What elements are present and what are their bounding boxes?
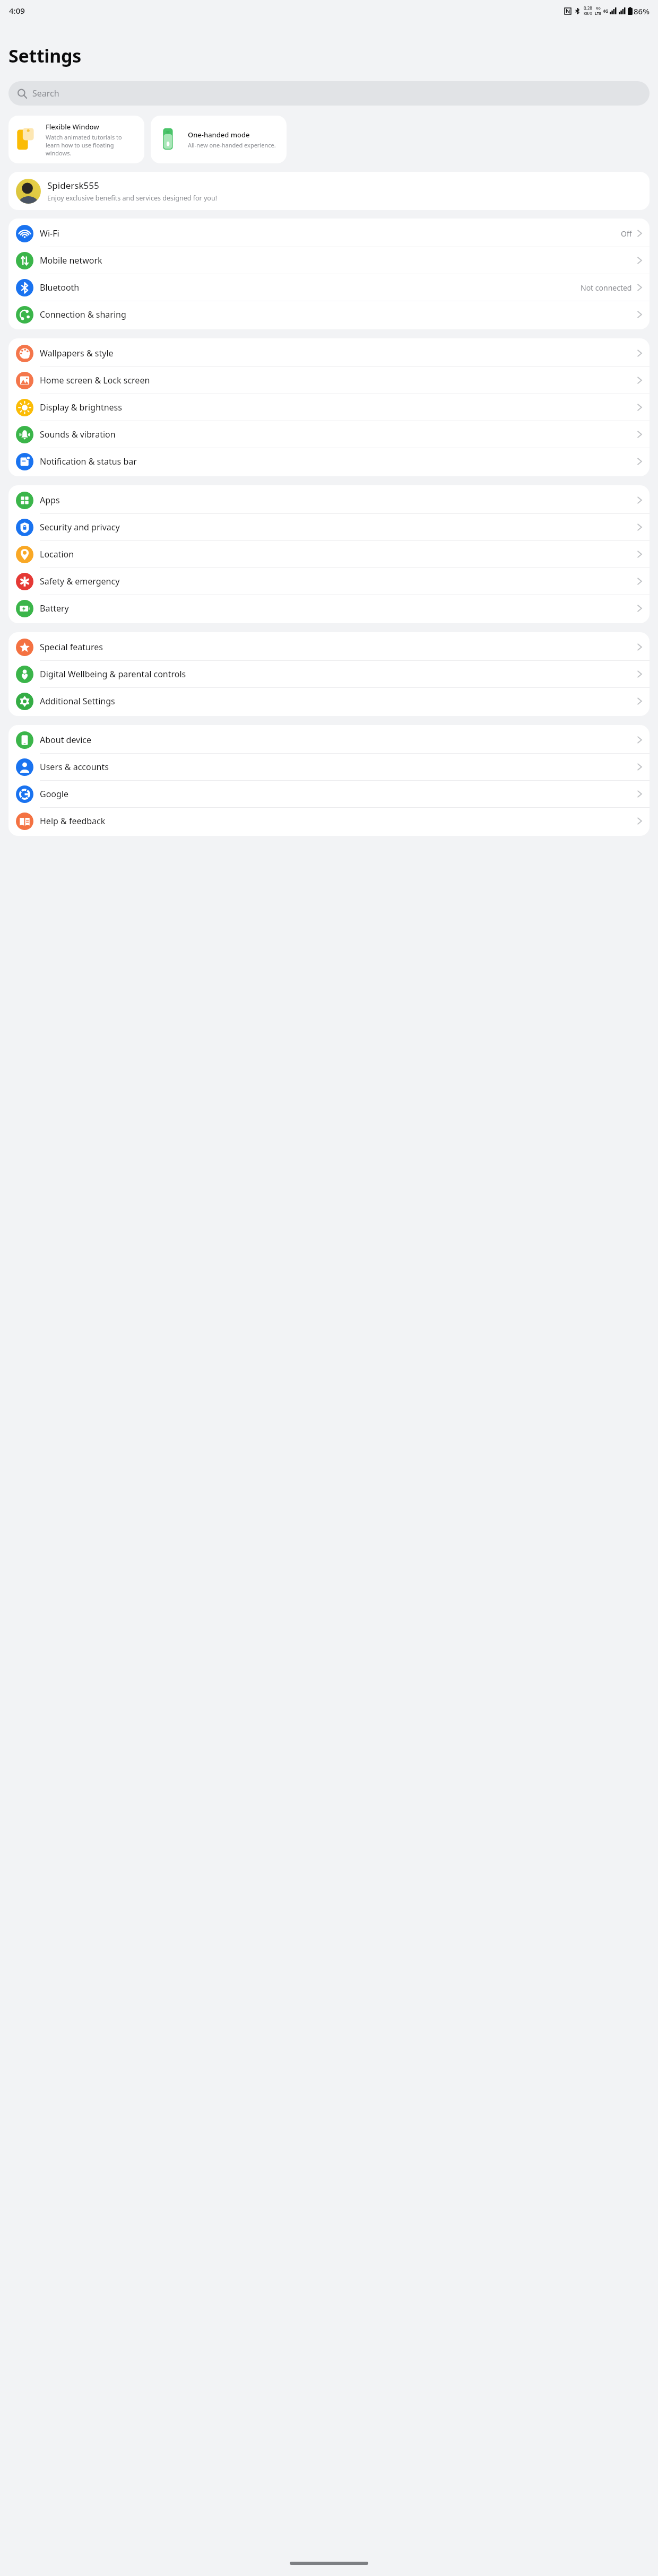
staticText: 86% <box>634 6 650 16</box>
staticText: Wi-Fi <box>40 228 621 239</box>
staticText: Google <box>40 788 637 800</box>
button[interactable]: Battery <box>8 595 650 622</box>
staticText: Connection & sharing <box>40 309 637 320</box>
staticText: Notification & status bar <box>40 456 637 467</box>
staticText: Additional Settings <box>40 695 637 707</box>
staticText: Digital Wellbeing & parental controls <box>40 668 637 680</box>
staticText: Search <box>32 88 59 99</box>
other: Apps <box>16 492 33 509</box>
staticText: Special features <box>40 641 637 653</box>
staticText: One-handed mode <box>188 130 250 139</box>
button[interactable]: Connection and sharing <box>8 301 650 328</box>
other: Help and feedback <box>16 813 33 830</box>
staticText: Spidersk555 <box>47 179 99 191</box>
button[interactable]: Help and feedback <box>8 808 650 834</box>
staticText: 0.28 <box>584 5 592 11</box>
other: Wi-Fi <box>16 225 33 242</box>
staticText: Sounds & vibration <box>40 429 637 440</box>
button[interactable]: Additional Settings <box>8 688 650 714</box>
other: Home screen and Lock screen <box>16 372 33 389</box>
button[interactable]: Display and brightness <box>8 394 650 421</box>
staticText: Users & accounts <box>40 761 637 773</box>
staticText: Safety & emergency <box>40 575 637 587</box>
staticText: LTE <box>595 11 601 16</box>
other: Bluetooth <box>16 279 33 296</box>
button[interactable]: About device <box>8 727 650 753</box>
button[interactable]: Apps <box>8 487 650 513</box>
staticText: About device <box>40 734 637 746</box>
button[interactable]: Wallpapers and style <box>8 340 650 366</box>
button[interactable]: Special features <box>8 634 650 660</box>
staticText: Off <box>621 229 632 239</box>
other: Display and brightness <box>16 399 33 416</box>
staticText: Apps <box>40 494 637 506</box>
staticText: Battery <box>40 602 637 614</box>
other: Mobile network <box>16 252 33 269</box>
other: Additional Settings <box>16 693 33 710</box>
staticText: All-new one-handed experience. <box>188 141 276 149</box>
other: Special features <box>16 639 33 656</box>
button[interactable]: Bluetooth <box>8 274 650 301</box>
staticText: Not connected <box>581 283 632 293</box>
staticText: 4:09 <box>9 5 25 16</box>
staticText: Help & feedback <box>40 815 637 827</box>
other: Digital Wellbeing and parental controls <box>16 666 33 683</box>
button[interactable]: Security and privacy <box>8 514 650 540</box>
other: Users and accounts <box>16 758 33 776</box>
button[interactable]: Notification and status bar <box>8 448 650 475</box>
staticText: Flexible Window <box>46 122 99 132</box>
button[interactable]: Spidersk555 <box>8 172 650 210</box>
button[interactable]: Home screen and Lock screen <box>8 367 650 394</box>
staticText: 4G <box>603 8 609 14</box>
button[interactable]: Sounds and vibration <box>8 421 650 448</box>
other: Sounds and vibration <box>16 426 33 443</box>
staticText: Watch animated tutorials to learn how to… <box>46 133 137 157</box>
button[interactable]: Safety and emergency <box>8 568 650 595</box>
staticText: Bluetooth <box>40 282 581 293</box>
button[interactable]: Flexible Window <box>8 116 144 163</box>
staticText: Enjoy exclusive benefits and services de… <box>47 194 217 203</box>
other: Wallpapers and style <box>16 345 33 362</box>
other: Location <box>16 546 33 563</box>
button[interactable]: Google <box>8 781 650 807</box>
button[interactable]: Digital Wellbeing and parental controls <box>8 661 650 687</box>
other: About device <box>16 731 33 749</box>
staticText: Mobile network <box>40 255 637 266</box>
staticText: Vo <box>596 6 601 11</box>
button[interactable]: Mobile network <box>8 247 650 274</box>
button[interactable]: Search <box>8 81 650 106</box>
other: Notification and status bar <box>16 453 33 470</box>
staticText: Settings <box>8 43 81 68</box>
button[interactable]: Users and accounts <box>8 754 650 780</box>
other: Google <box>16 785 33 803</box>
button[interactable]: Wi-Fi <box>8 220 650 247</box>
staticText: Wallpapers & style <box>40 347 637 359</box>
staticText: Home screen & Lock screen <box>40 374 637 386</box>
staticText: KB/S <box>584 11 592 16</box>
other: Safety and emergency <box>16 573 33 590</box>
button[interactable]: Location <box>8 541 650 567</box>
staticText: Display & brightness <box>40 401 637 413</box>
staticText: Location <box>40 548 637 560</box>
staticText: Security and privacy <box>40 521 637 533</box>
other: Connection and sharing <box>16 306 33 324</box>
other: Battery <box>16 600 33 617</box>
button[interactable]: One-handed mode <box>151 116 287 163</box>
other: Security and privacy <box>16 519 33 536</box>
